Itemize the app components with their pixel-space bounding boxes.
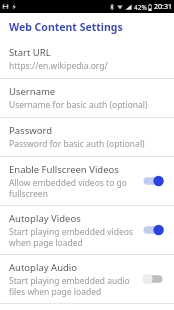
button[interactable]: Start URL xyxy=(0,40,174,78)
button[interactable]: Username xyxy=(0,79,174,117)
staticText: Username xyxy=(9,85,56,98)
button[interactable]: Password xyxy=(0,118,174,156)
button[interactable]: Enable Fullscreen Videos xyxy=(0,157,174,205)
staticText: Web Content Settings xyxy=(9,20,123,34)
staticText: https://en.wikipedia.org/ xyxy=(9,60,108,72)
button[interactable]: Toggle on xyxy=(139,221,167,239)
staticText: Password xyxy=(9,124,52,137)
staticText: Start URL xyxy=(9,46,51,59)
staticText: Enable Fullscreen Videos xyxy=(9,163,119,176)
staticText: Password for basic auth (optional) xyxy=(9,138,145,150)
staticText: Start playing embedded videos when page … xyxy=(9,226,133,248)
staticText: 42% xyxy=(134,3,147,12)
button[interactable]: Toggle on xyxy=(139,172,167,190)
button[interactable]: Toggle off xyxy=(139,270,167,288)
staticText: Autoplay Videos xyxy=(9,212,81,225)
staticText: 20:31 xyxy=(154,2,172,12)
staticText: Username for basic auth (optional) xyxy=(9,99,148,111)
staticText: Allow embedded videos to go fullscreen xyxy=(9,177,133,199)
staticText: Autoplay Audio xyxy=(9,261,78,274)
button[interactable]: Autoplay Audio xyxy=(0,255,174,303)
staticText: Start playing embedded audio files when … xyxy=(9,275,133,297)
button[interactable]: Autoplay Videos xyxy=(0,206,174,254)
